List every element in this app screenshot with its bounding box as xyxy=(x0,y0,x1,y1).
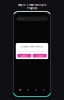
button[interactable]: Create xyxy=(33,54,47,57)
button[interactable]: Cancel xyxy=(17,54,31,57)
button[interactable]: Library xyxy=(32,88,40,92)
staticText: Search xyxy=(18,17,24,20)
button[interactable]: Search xyxy=(24,88,32,92)
staticText: Create xyxy=(37,54,43,57)
button[interactable]: Home xyxy=(16,88,24,92)
staticText: Cancel xyxy=(21,54,27,57)
button[interactable]: Profile xyxy=(40,88,48,92)
staticText: Playlists xyxy=(27,6,37,10)
staticText: Easy to Create Multiple xyxy=(18,3,46,6)
staticText: Create New Playlist xyxy=(21,45,43,48)
